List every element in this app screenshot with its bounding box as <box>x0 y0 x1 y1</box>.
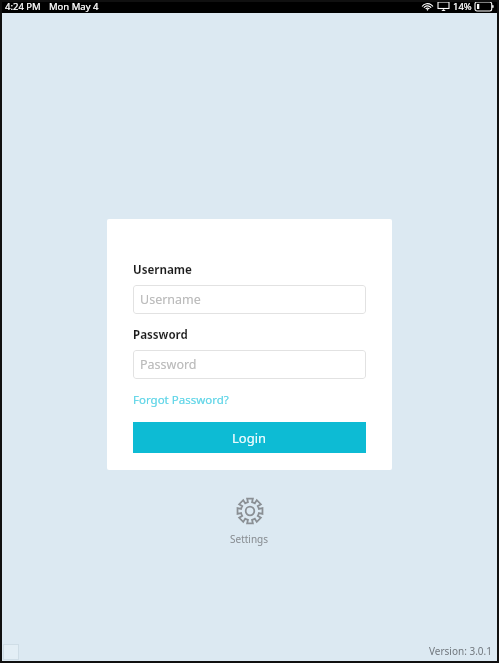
staticText: Username <box>140 291 201 308</box>
staticText: Settings <box>230 532 269 546</box>
staticText: Forgot Password? <box>133 392 229 408</box>
staticText: Version: 3.0.1 <box>429 644 492 658</box>
staticText: Password <box>133 327 188 343</box>
button[interactable]: Settings <box>216 491 283 550</box>
other: Settings <box>234 495 266 527</box>
button[interactable]: Forgot Password? <box>133 392 229 408</box>
staticText: 14% <box>453 0 472 13</box>
staticText: Mon May 4 <box>49 0 99 13</box>
staticText: 4:24 PM <box>5 0 41 13</box>
staticText: Password <box>140 356 197 373</box>
button[interactable]: Password <box>133 350 366 379</box>
button[interactable]: Username <box>133 285 366 314</box>
staticText: Login <box>232 429 267 447</box>
button[interactable]: Login <box>133 422 366 453</box>
staticText: Username <box>133 262 192 278</box>
